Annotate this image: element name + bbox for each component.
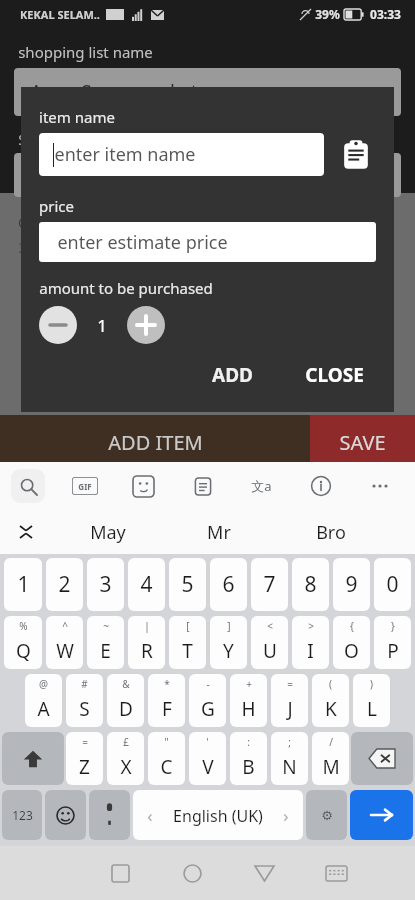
button[interactable]: 2 <box>46 558 83 611</box>
button[interactable]: translate <box>232 462 291 510</box>
button[interactable]: ] <box>210 616 247 669</box>
staticText: T <box>182 638 193 664</box>
staticText: W <box>56 638 74 664</box>
button[interactable]: Decrease amount <box>39 306 77 344</box>
staticText: amount to be purchased <box>39 278 213 298</box>
button[interactable]: enter estimate price <box>39 222 376 262</box>
staticText: V <box>202 754 214 780</box>
staticText: S <box>18 130 26 149</box>
button[interactable]: May <box>52 510 163 554</box>
button[interactable]: + <box>230 674 267 727</box>
button[interactable]: Backspace <box>351 732 413 785</box>
staticText: 39% <box>315 6 340 22</box>
button[interactable]: ~ <box>87 616 124 669</box>
button[interactable]: GIF <box>56 462 114 510</box>
button[interactable]: = <box>66 732 103 785</box>
button[interactable]: % <box>4 616 42 669</box>
button[interactable]: Enter <box>350 790 413 840</box>
button[interactable]: 1 <box>4 558 42 611</box>
staticText: R <box>141 638 153 664</box>
button[interactable]: Emoji <box>45 790 86 840</box>
button[interactable]: 0 <box>374 558 411 611</box>
button[interactable]: Search <box>0 462 56 510</box>
button[interactable]: ADD <box>198 356 267 394</box>
staticText: ~ <box>103 619 109 633</box>
staticText: < <box>267 619 273 633</box>
button[interactable]: £ <box>107 732 144 785</box>
button[interactable]: " <box>148 732 185 785</box>
staticText: ⚙ <box>321 808 333 823</box>
button[interactable]: } <box>374 616 411 669</box>
button[interactable]: Back <box>228 846 300 900</box>
button[interactable]: ( <box>312 674 349 727</box>
staticText: ; <box>288 735 291 749</box>
staticText: Aeon Supermarket <box>30 79 198 105</box>
button[interactable]: { <box>333 616 370 669</box>
button[interactable]: Hide keyboard <box>300 846 372 900</box>
button[interactable]: | <box>128 616 165 669</box>
button[interactable]: enter item name <box>39 133 324 176</box>
staticText: * <box>164 677 170 691</box>
button[interactable]: 5 <box>169 558 206 611</box>
staticText: # <box>81 677 88 691</box>
button[interactable]: Recent apps <box>85 846 156 900</box>
button[interactable]: : <box>230 732 267 785</box>
button[interactable]: CLOSE <box>293 356 376 394</box>
staticText: ) <box>370 677 373 691</box>
button[interactable]: ‹ <box>133 790 303 840</box>
button[interactable]: Shift <box>2 732 64 785</box>
staticText: Bro <box>316 520 346 545</box>
staticText: 6 <box>222 570 235 599</box>
button[interactable]: SAVE <box>310 415 415 469</box>
button[interactable]: Aeon Supermarket <box>14 68 401 116</box>
button[interactable]: Mr <box>163 510 275 554</box>
staticText: item name <box>39 107 115 127</box>
staticText: ' <box>206 735 209 749</box>
staticText: [ <box>186 619 190 633</box>
button[interactable]: > <box>292 616 329 669</box>
button[interactable]: - <box>189 674 226 727</box>
button[interactable]: # <box>66 674 103 727</box>
button[interactable]: Voice input <box>89 790 130 840</box>
button[interactable]: sticker <box>114 462 173 510</box>
button[interactable]: / <box>312 732 349 785</box>
button[interactable]: = <box>271 674 308 727</box>
button[interactable]: [ <box>169 616 206 669</box>
staticText: enter estimate price <box>57 230 228 255</box>
button[interactable]: 8 <box>292 558 329 611</box>
button[interactable]: more <box>350 462 409 510</box>
button[interactable]: * <box>148 674 185 727</box>
button[interactable]: Settings <box>306 790 347 840</box>
button[interactable]: 7 <box>251 558 288 611</box>
staticText: G <box>201 696 215 722</box>
button[interactable]: & <box>107 674 144 727</box>
button[interactable]: ' <box>189 732 226 785</box>
button[interactable]: < <box>251 616 288 669</box>
button[interactable]: Expand <box>0 510 52 554</box>
button[interactable]: ^ <box>46 616 83 669</box>
button[interactable]: @ <box>25 674 62 727</box>
button[interactable]: 6 <box>210 558 247 611</box>
staticText: { <box>350 619 354 633</box>
button[interactable]: 9 <box>333 558 370 611</box>
button[interactable]: 123 <box>2 790 42 840</box>
staticText: Mr <box>207 520 231 545</box>
button[interactable]: ) <box>353 674 390 727</box>
staticText: E <box>100 638 111 664</box>
button[interactable]: 4 <box>128 558 165 611</box>
button[interactable]: clipboard <box>173 462 232 510</box>
button[interactable]: Bro <box>275 510 387 554</box>
button[interactable]: info <box>291 462 350 510</box>
button[interactable]: Paste from clipboard <box>336 135 376 175</box>
button[interactable]: ADD ITEM <box>0 415 310 469</box>
staticText: D <box>119 696 133 722</box>
staticText: H <box>241 696 256 722</box>
button[interactable]: Increase amount <box>127 306 165 344</box>
staticText: O <box>344 638 359 664</box>
button[interactable]: Home <box>156 846 228 900</box>
button[interactable]: ; <box>271 732 308 785</box>
button[interactable] <box>14 153 401 197</box>
staticText: = <box>82 735 88 749</box>
button[interactable]: 3 <box>87 558 124 611</box>
staticText: English (UK) <box>173 805 263 827</box>
